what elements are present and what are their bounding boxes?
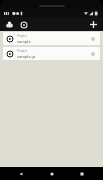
button[interactable]: Project bbox=[3, 47, 100, 60]
staticText: sample-ja bbox=[17, 54, 36, 59]
button[interactable]: Project bbox=[3, 32, 100, 45]
button[interactable]: Home bbox=[42, 167, 62, 180]
button[interactable]: More options bbox=[88, 49, 97, 58]
button[interactable]: Recent apps bbox=[72, 167, 92, 180]
button[interactable]: Account bbox=[18, 19, 29, 30]
button[interactable]: Add project bbox=[87, 18, 99, 30]
staticText: Project bbox=[17, 34, 27, 38]
button[interactable]: Cloud sync bbox=[4, 19, 15, 30]
staticText: Project bbox=[17, 49, 27, 53]
staticText: sample bbox=[17, 39, 31, 44]
button[interactable]: More options bbox=[88, 34, 97, 43]
button[interactable]: Back bbox=[11, 167, 31, 180]
